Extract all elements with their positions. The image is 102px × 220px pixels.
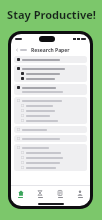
button[interactable] [14,56,87,63]
staticText: Stay Productive! [7,7,96,22]
button[interactable] [14,135,87,142]
button[interactable]: Tasks [30,186,50,201]
button[interactable]: Back [15,48,27,52]
button[interactable]: Home [11,186,30,201]
button[interactable] [14,144,87,171]
button[interactable]: Profile [70,186,90,201]
button[interactable]: Notes [50,186,70,201]
button[interactable] [14,97,87,124]
button[interactable] [14,84,87,95]
button[interactable] [14,65,87,82]
button[interactable] [14,126,87,133]
staticText: Research Paper [31,47,70,54]
